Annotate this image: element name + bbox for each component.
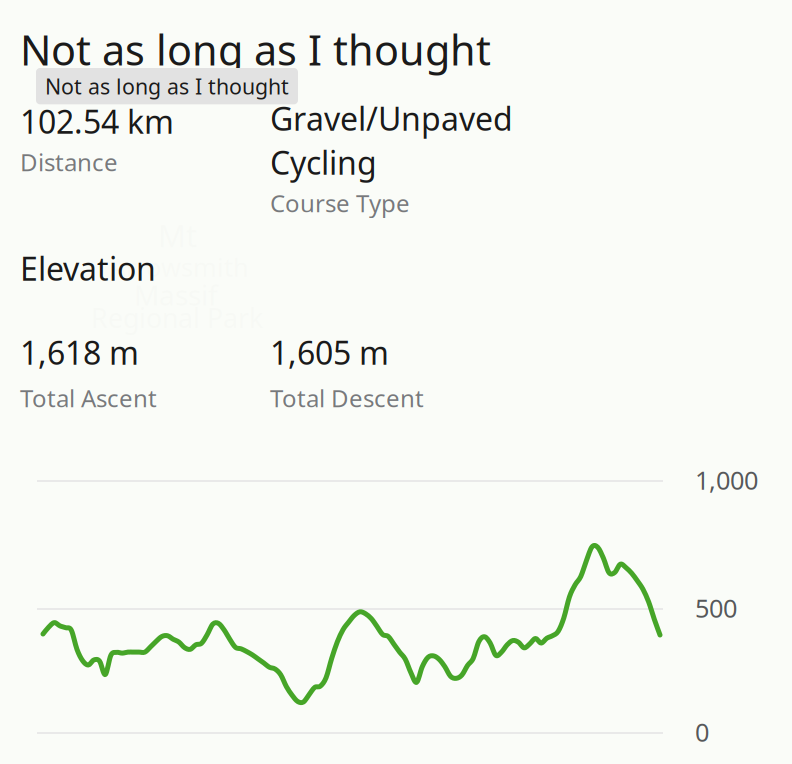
staticText: Total Descent xyxy=(270,382,424,414)
staticText: Not as long as I thought xyxy=(20,22,491,77)
staticText: Massif xyxy=(134,276,218,313)
staticText: 1,000 xyxy=(695,463,758,497)
staticText: 0 xyxy=(695,715,709,749)
button[interactable]: Not as long as I thought xyxy=(20,22,491,77)
staticText: Total Ascent xyxy=(20,382,157,414)
staticText: Not as long as I thought xyxy=(45,72,289,100)
staticText: 1,605 m xyxy=(270,331,389,373)
staticText: Gravel/Unpaved xyxy=(270,97,513,139)
staticText: Distance xyxy=(20,146,118,178)
staticText: Arrowsmith xyxy=(110,250,249,284)
staticText: Cycling xyxy=(270,141,377,183)
staticText: Elevation xyxy=(20,247,156,289)
staticText: Course Type xyxy=(270,187,410,219)
staticText: 500 xyxy=(695,591,737,625)
button[interactable]: Not as long as I thought xyxy=(36,68,298,104)
staticText: 102.54 km xyxy=(20,100,174,142)
staticText: 1,618 m xyxy=(20,331,139,373)
